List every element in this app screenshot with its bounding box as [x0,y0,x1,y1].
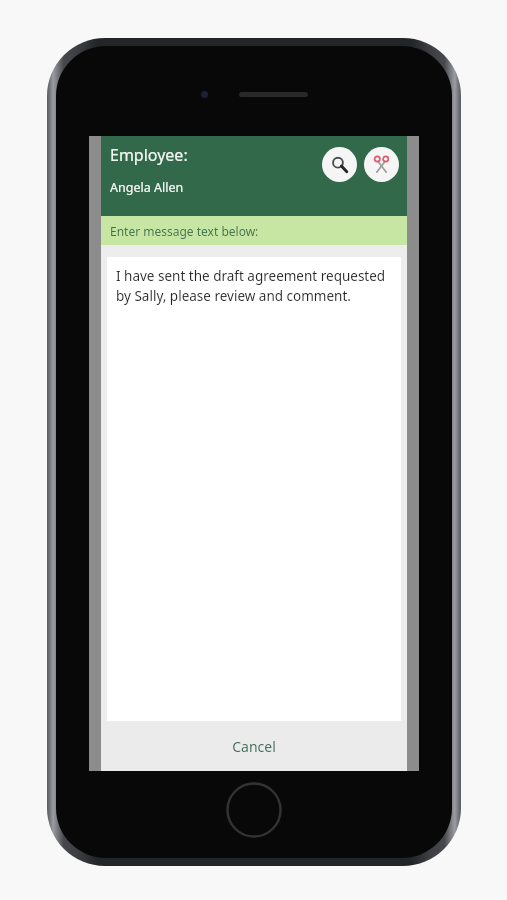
button[interactable]: I have sent the draft agreement requeste… [107,257,401,721]
button[interactable]: Cut [364,147,399,182]
staticText: Cancel [232,737,276,756]
staticText: I have sent the draft agreement requeste… [116,267,389,305]
staticText: Angela Allen [110,179,184,196]
staticText: Enter message text below: [110,223,259,239]
button[interactable]: Cancel [101,721,407,771]
button[interactable]: Search [322,147,357,182]
staticText: Employee: [110,144,188,166]
